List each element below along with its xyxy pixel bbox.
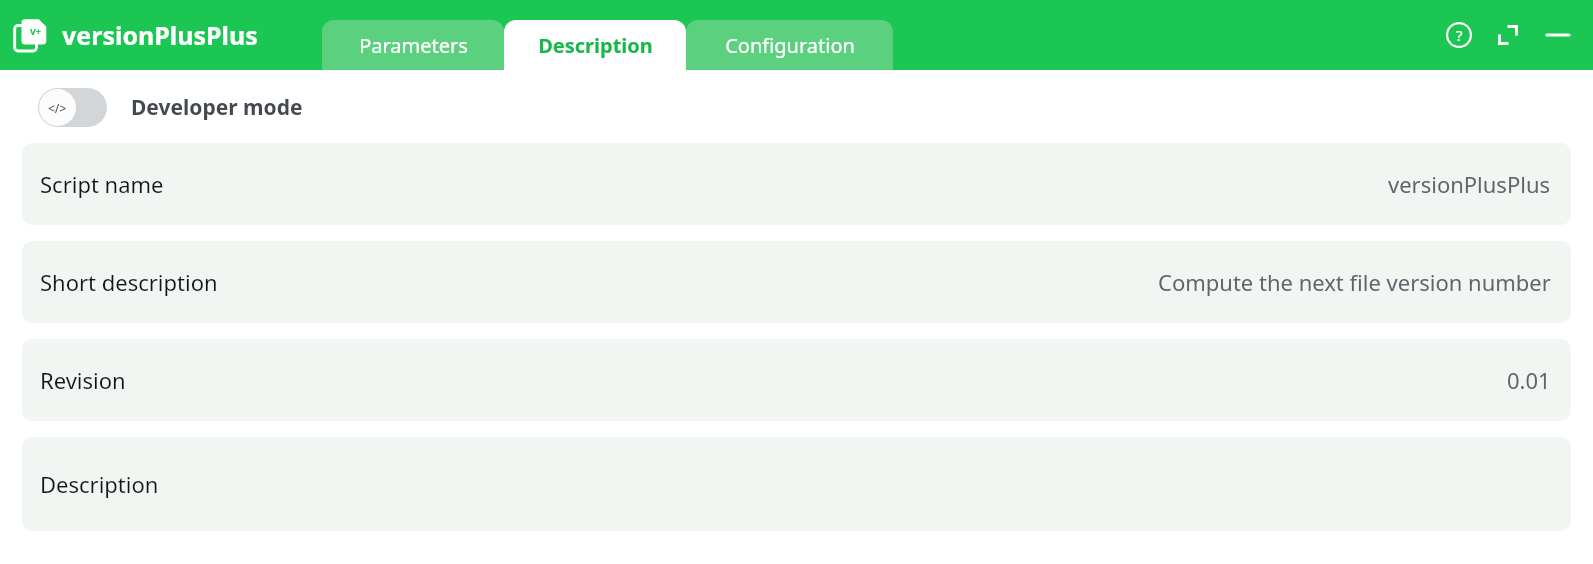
- staticText: Configuration: [725, 32, 855, 59]
- staticText: </>: [48, 100, 67, 116]
- staticText: Compute the next file version number: [1158, 267, 1551, 297]
- button[interactable]: Description: [22, 437, 1571, 531]
- button[interactable]: Configuration: [686, 20, 893, 70]
- staticText: Description: [538, 32, 653, 59]
- button[interactable]: Maximize: [1493, 20, 1523, 50]
- button[interactable]: Revision: [22, 339, 1571, 421]
- staticText: Script name: [40, 169, 164, 199]
- other: App icon: [14, 18, 48, 52]
- staticText: Developer mode: [131, 93, 303, 122]
- button[interactable]: Minimize: [1543, 20, 1573, 50]
- button[interactable]: Script name: [22, 143, 1571, 225]
- button[interactable]: Short description: [22, 241, 1571, 323]
- button[interactable]: Help: [1443, 19, 1475, 51]
- staticText: versionPlusPlus: [1388, 169, 1551, 199]
- staticText: V+: [30, 25, 41, 37]
- button[interactable]: Parameters: [322, 20, 504, 70]
- staticText: ?: [1456, 25, 1463, 45]
- staticText: versionPlusPlus: [62, 18, 258, 52]
- other: Developer mode toggle: [38, 88, 107, 127]
- staticText: Description: [40, 469, 159, 499]
- staticText: 0.01: [1507, 365, 1551, 395]
- button[interactable]: Description: [504, 20, 686, 70]
- button[interactable]: Developer mode toggle: [38, 88, 303, 127]
- staticText: Parameters: [359, 32, 468, 59]
- staticText: Revision: [40, 365, 126, 395]
- staticText: Short description: [40, 267, 218, 297]
